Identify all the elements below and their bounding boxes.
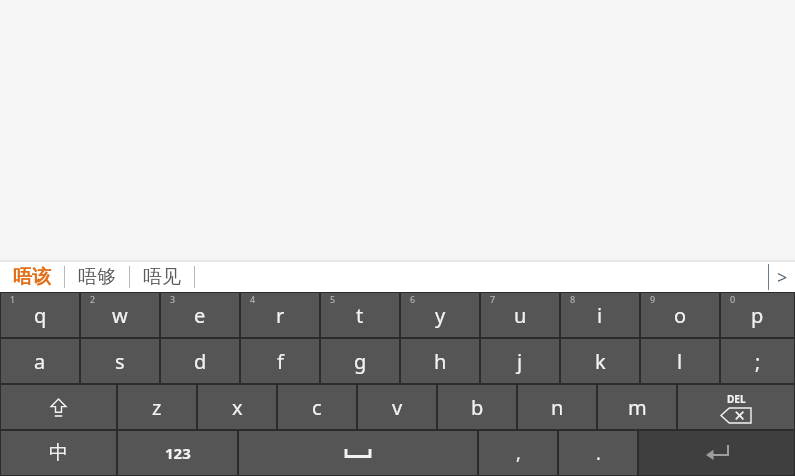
button[interactable]: 中 bbox=[1, 431, 116, 475]
button[interactable]: h bbox=[401, 339, 479, 383]
staticText: c bbox=[312, 394, 322, 421]
button[interactable]: 4 bbox=[241, 293, 319, 337]
staticText: j bbox=[517, 348, 523, 375]
staticText: 6 bbox=[410, 293, 416, 305]
button[interactable]: b bbox=[438, 385, 516, 429]
staticText: 5 bbox=[330, 293, 336, 305]
staticText: 唔够 bbox=[78, 265, 116, 289]
button[interactable]: c bbox=[278, 385, 356, 429]
staticText: 8 bbox=[570, 293, 576, 305]
staticText: n bbox=[551, 394, 564, 421]
staticText: l bbox=[677, 348, 683, 375]
staticText: 3 bbox=[170, 293, 176, 305]
staticText: e bbox=[194, 302, 206, 329]
staticText: 唔该 bbox=[13, 265, 51, 289]
button[interactable]: a bbox=[1, 339, 79, 383]
staticText: 0 bbox=[730, 293, 736, 305]
button[interactable]: Enter bbox=[639, 431, 794, 475]
button[interactable]: z bbox=[118, 385, 196, 429]
staticText: 2 bbox=[90, 293, 96, 305]
button[interactable]: d bbox=[161, 339, 239, 383]
button[interactable]: Space bbox=[239, 431, 477, 475]
button[interactable]: ; bbox=[721, 339, 794, 383]
staticText: . bbox=[596, 441, 601, 466]
staticText: t bbox=[356, 302, 364, 329]
staticText: 123 bbox=[165, 443, 191, 463]
staticText: 1 bbox=[10, 293, 16, 305]
button[interactable]: n bbox=[518, 385, 596, 429]
staticText: 唔见 bbox=[143, 265, 181, 289]
button[interactable]: 6 bbox=[401, 293, 479, 337]
button[interactable]: v bbox=[358, 385, 436, 429]
button[interactable]: More candidates bbox=[769, 262, 795, 292]
staticText: , bbox=[516, 441, 521, 466]
button[interactable]: 9 bbox=[641, 293, 719, 337]
button[interactable]: 5 bbox=[321, 293, 399, 337]
staticText: a bbox=[34, 348, 46, 375]
button[interactable]: k bbox=[561, 339, 639, 383]
staticText: 9 bbox=[650, 293, 656, 305]
button[interactable]: 123 bbox=[118, 431, 237, 475]
staticText: q bbox=[34, 302, 47, 329]
staticText: g bbox=[354, 348, 367, 375]
button[interactable]: . bbox=[559, 431, 637, 475]
staticText: d bbox=[194, 348, 207, 375]
button[interactable]: 0 bbox=[721, 293, 794, 337]
staticText: w bbox=[112, 302, 128, 329]
button[interactable]: l bbox=[641, 339, 719, 383]
staticText: r bbox=[276, 302, 285, 329]
button[interactable]: s bbox=[81, 339, 159, 383]
staticText: p bbox=[751, 302, 764, 329]
button[interactable]: Shift bbox=[1, 385, 116, 429]
staticText: 7 bbox=[490, 293, 496, 305]
staticText: 中 bbox=[49, 441, 68, 465]
button[interactable]: x bbox=[198, 385, 276, 429]
staticText: f bbox=[277, 348, 284, 375]
staticText: o bbox=[674, 302, 687, 329]
button[interactable]: 唔见 bbox=[130, 262, 194, 292]
staticText: y bbox=[435, 302, 446, 329]
staticText: k bbox=[595, 348, 606, 375]
staticText: x bbox=[232, 394, 243, 421]
staticText: DEL bbox=[727, 392, 746, 406]
button[interactable]: 7 bbox=[481, 293, 559, 337]
button[interactable]: f bbox=[241, 339, 319, 383]
button[interactable]: 8 bbox=[561, 293, 639, 337]
staticText: i bbox=[597, 302, 603, 329]
button[interactable]: 3 bbox=[161, 293, 239, 337]
staticText: ; bbox=[755, 348, 761, 375]
button[interactable]: , bbox=[479, 431, 557, 475]
button[interactable]: g bbox=[321, 339, 399, 383]
staticText: s bbox=[115, 348, 125, 375]
button[interactable]: 唔够 bbox=[65, 262, 129, 292]
staticText: m bbox=[628, 394, 647, 421]
button[interactable]: 2 bbox=[81, 293, 159, 337]
staticText: z bbox=[152, 394, 162, 421]
button[interactable]: 唔该 bbox=[0, 262, 64, 292]
staticText: 4 bbox=[250, 293, 256, 305]
staticText: b bbox=[471, 394, 484, 421]
staticText: h bbox=[434, 348, 447, 375]
button[interactable]: j bbox=[481, 339, 559, 383]
staticText: > bbox=[777, 265, 788, 290]
button[interactable]: Delete bbox=[678, 385, 794, 429]
button[interactable]: m bbox=[598, 385, 676, 429]
staticText: u bbox=[514, 302, 527, 329]
button[interactable]: 1 bbox=[1, 293, 79, 337]
staticText: v bbox=[392, 394, 403, 421]
